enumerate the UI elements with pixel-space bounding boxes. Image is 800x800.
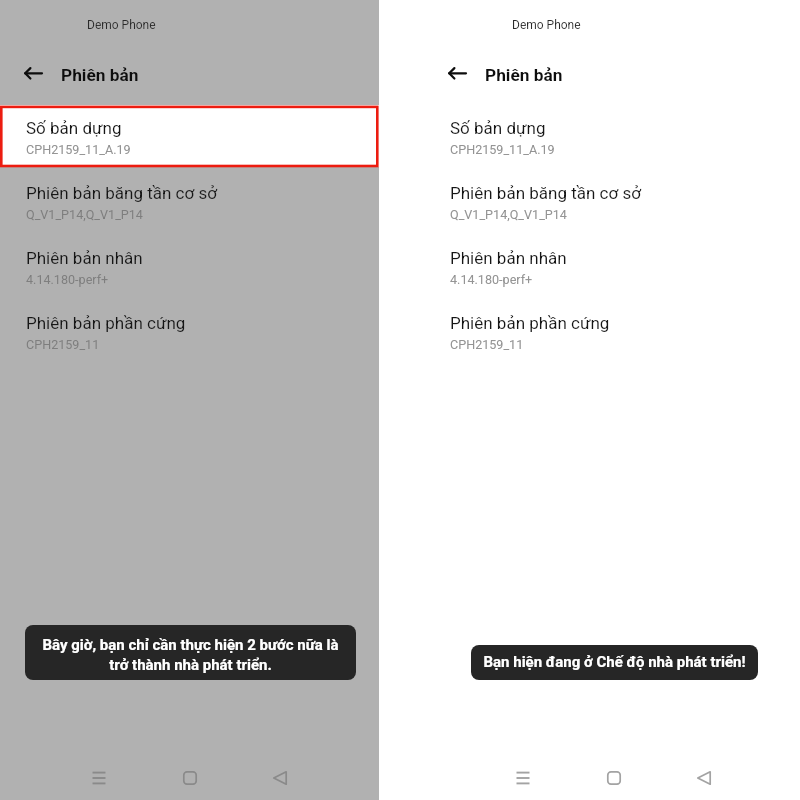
- button[interactable]: Phiên bản băng tần cơ sở: [450, 179, 780, 227]
- button[interactable]: Phiên bản nhân: [450, 244, 780, 292]
- staticText: Demo Phone: [512, 18, 581, 32]
- staticText: Số bản dựng: [450, 118, 546, 138]
- button[interactable]: Back: [447, 62, 468, 83]
- staticText: Phiên bản băng tần cơ sở: [450, 183, 641, 203]
- staticText: Q_V1_P14,Q_V1_P14: [26, 207, 143, 222]
- staticText: Phiên bản phần cứng: [26, 313, 186, 333]
- staticText: CPH2159_11: [450, 337, 524, 352]
- staticText: Demo Phone: [87, 18, 156, 32]
- staticText: Bây giờ, bạn chỉ cần thực hiện 2 bước nữ…: [25, 636, 356, 674]
- staticText: Phiên bản nhân: [450, 248, 567, 268]
- button[interactable]: Số bản dựng: [26, 114, 356, 162]
- staticText: Phiên bản: [485, 65, 563, 85]
- staticText: CPH2159_11: [26, 337, 100, 352]
- button[interactable]: Phiên bản băng tần cơ sở: [26, 179, 356, 227]
- staticText: Phiên bản phần cứng: [450, 313, 610, 333]
- button[interactable]: Back: [689, 762, 721, 794]
- button[interactable]: Phiên bản phần cứng: [450, 309, 780, 357]
- staticText: CPH2159_11_A.19: [450, 142, 555, 157]
- staticText: Phiên bản nhân: [26, 248, 143, 268]
- button[interactable]: Recent apps: [507, 762, 539, 794]
- button[interactable]: Phiên bản nhân: [26, 244, 356, 292]
- staticText: Bạn hiện đang ở Chế độ nhà phát triển!: [471, 653, 758, 671]
- staticText: Số bản dựng: [26, 118, 122, 138]
- button[interactable]: Phiên bản phần cứng: [26, 309, 356, 357]
- staticText: Phiên bản băng tần cơ sở: [26, 183, 217, 203]
- button[interactable]: Back: [23, 62, 44, 83]
- button[interactable]: Home: [174, 762, 206, 794]
- staticText: 4.14.180-perf+: [450, 272, 533, 287]
- staticText: Q_V1_P14,Q_V1_P14: [450, 207, 567, 222]
- staticText: 4.14.180-perf+: [26, 272, 109, 287]
- button[interactable]: Số bản dựng: [450, 114, 780, 162]
- staticText: CPH2159_11_A.19: [26, 142, 131, 157]
- button[interactable]: Home: [598, 762, 630, 794]
- button[interactable]: Back: [265, 762, 297, 794]
- staticText: Phiên bản: [61, 65, 139, 85]
- button[interactable]: Recent apps: [83, 762, 115, 794]
